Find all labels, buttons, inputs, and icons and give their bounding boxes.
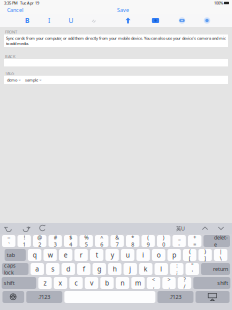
- button[interactable]: t: [90, 249, 103, 261]
- staticText: .?123: [38, 293, 50, 301]
- button[interactable]: Camera: [143, 14, 167, 27]
- button[interactable]: !: [17, 235, 31, 247]
- button[interactable]: ": [185, 263, 199, 275]
- staticText: a: [35, 265, 39, 273]
- button[interactable]: e: [59, 249, 72, 261]
- staticText: ': [192, 269, 193, 276]
- button[interactable]: v: [85, 277, 98, 289]
- staticText: =: [193, 241, 196, 248]
- button[interactable]: u: [121, 249, 134, 261]
- staticText: ×: [18, 77, 20, 82]
- staticText: TAGS: [5, 70, 14, 76]
- button[interactable]: l: [154, 263, 168, 275]
- button[interactable]: Reload: [37, 223, 49, 233]
- button[interactable]: m: [131, 277, 145, 289]
- staticText: ]: [204, 255, 206, 262]
- button[interactable]: g: [92, 263, 106, 275]
- button[interactable]: }: [198, 249, 212, 261]
- button[interactable]: Save: [112, 6, 134, 14]
- staticText: <: [152, 276, 155, 283]
- button[interactable]: q: [28, 249, 41, 261]
- button[interactable]: o: [152, 249, 165, 261]
- button[interactable]: Insert link: [82, 14, 106, 27]
- button[interactable]: shift: [193, 277, 230, 289]
- button[interactable]: @: [33, 235, 46, 247]
- button[interactable]: |: [214, 249, 227, 261]
- button[interactable]: %: [79, 235, 93, 247]
- button[interactable]: Help: [195, 14, 219, 27]
- button[interactable]: #: [48, 235, 62, 247]
- button[interactable]: p: [167, 249, 181, 261]
- staticText: r: [80, 251, 83, 259]
- staticText: tab: [7, 251, 15, 259]
- button[interactable]: Next keyboard: [2, 291, 24, 303]
- button[interactable]: j: [123, 263, 137, 275]
- button[interactable]: tab: [5, 249, 26, 261]
- staticText: q: [33, 251, 37, 259]
- button[interactable]: Redo: [20, 223, 32, 233]
- button[interactable]: *: [126, 235, 139, 247]
- button[interactable]: Preview: [170, 14, 194, 27]
- button[interactable]: .?123: [26, 291, 62, 303]
- button[interactable]: shift: [2, 277, 36, 289]
- staticText: $: [69, 234, 72, 241]
- button[interactable]: >: [162, 277, 176, 289]
- button[interactable]: Previous field: [199, 223, 211, 233]
- button[interactable]: B: [16, 14, 38, 27]
- staticText: #: [54, 234, 57, 241]
- button[interactable]: U: [60, 14, 82, 27]
- button[interactable]: ~: [2, 235, 15, 247]
- button[interactable]: _: [172, 235, 186, 247]
- button[interactable]: z: [38, 277, 52, 289]
- button[interactable]: w: [43, 249, 57, 261]
- staticText: e: [64, 251, 68, 259]
- button[interactable]: sample: [25, 77, 41, 82]
- staticText: 1: [23, 241, 26, 248]
- staticText: B: [25, 16, 29, 25]
- button[interactable]: h: [108, 263, 121, 275]
- button[interactable]: n: [116, 277, 129, 289]
- button[interactable]: return: [201, 263, 230, 275]
- staticText: f: [83, 265, 85, 273]
- button[interactable]: delete: [203, 235, 230, 247]
- button[interactable]: Record audio: [116, 14, 140, 27]
- button[interactable]: <: [147, 277, 160, 289]
- button[interactable]: f: [77, 263, 90, 275]
- staticText: 英U: [176, 225, 185, 232]
- button[interactable]: Hide keyboard: [196, 291, 230, 303]
- button[interactable]: c: [69, 277, 83, 289]
- button[interactable]: ): [157, 235, 170, 247]
- button[interactable]: (: [141, 235, 155, 247]
- button[interactable]: d: [61, 263, 75, 275]
- button[interactable]: a: [30, 263, 44, 275]
- button[interactable]: ^: [95, 235, 108, 247]
- staticText: 3: [54, 241, 57, 248]
- button[interactable]: caps lock: [2, 263, 28, 275]
- button[interactable]: :: [170, 263, 183, 275]
- button[interactable]: x: [54, 277, 67, 289]
- staticText: m: [135, 279, 141, 287]
- button[interactable]: I: [38, 14, 60, 27]
- staticText: w: [48, 251, 53, 259]
- staticText: {: [189, 248, 191, 255]
- button[interactable]: +: [188, 235, 201, 247]
- button[interactable]: .?123: [157, 291, 193, 303]
- staticText: c: [74, 279, 77, 287]
- button[interactable]: s: [46, 263, 59, 275]
- staticText: o: [157, 251, 161, 259]
- button[interactable]: y: [105, 249, 119, 261]
- staticText: _: [178, 234, 180, 241]
- button[interactable]: b: [100, 277, 114, 289]
- button[interactable]: $: [64, 235, 77, 247]
- button[interactable]: demo: [7, 77, 20, 82]
- button[interactable]: Cancel: [4, 6, 26, 14]
- button[interactable]: ?: [178, 277, 191, 289]
- button[interactable]: {: [183, 249, 196, 261]
- button[interactable]: r: [74, 249, 88, 261]
- button[interactable]: Undo: [3, 223, 15, 233]
- button[interactable]: &: [110, 235, 124, 247]
- button[interactable]: Next field: [215, 223, 227, 233]
- button[interactable]: i: [136, 249, 150, 261]
- button[interactable]: k: [139, 263, 152, 275]
